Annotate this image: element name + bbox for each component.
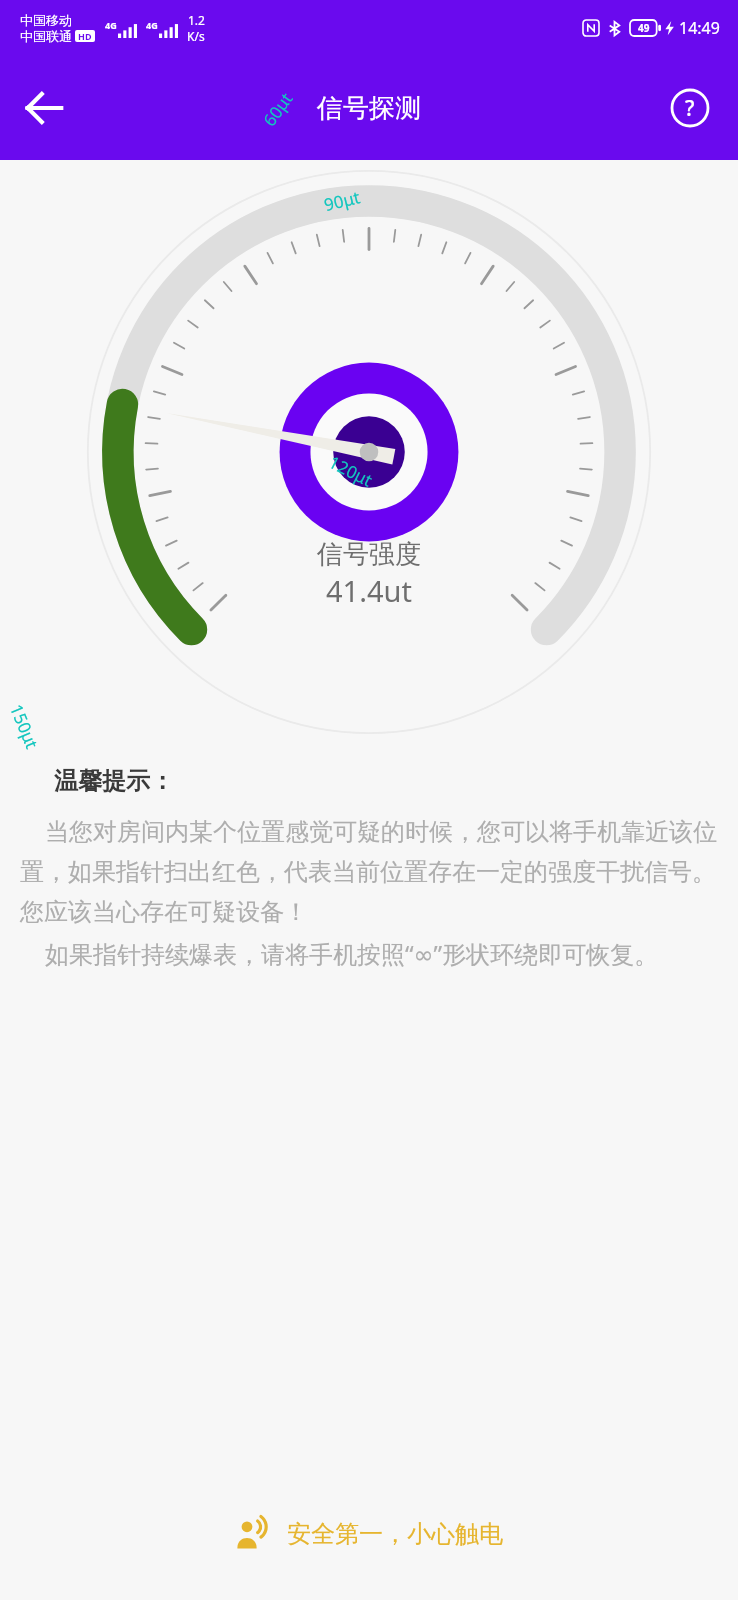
staticText: 温馨提示：: [54, 766, 174, 796]
staticText: 如果指针持续爆表，请将手机按照“∞”形状环绕即可恢复。: [20, 937, 659, 970]
staticText: 41.4ut: [326, 571, 412, 610]
staticText: HD: [78, 30, 92, 42]
staticText: 150μt: [517, 357, 555, 408]
staticText: 1.2: [188, 12, 205, 28]
staticText: 0μt: [223, 562, 258, 597]
staticText: 安全第一，小心触电: [287, 1519, 503, 1549]
staticText: 49: [638, 21, 650, 35]
button[interactable]: 安全第一，小心触电: [0, 1514, 738, 1554]
staticText: 信号探测: [317, 92, 421, 125]
staticText: 14:49: [679, 17, 720, 39]
staticText: 当您对房间内某个位置感觉可疑的时候，您可以将手机靠近该位置，如果指针扫出红色，代…: [20, 814, 718, 927]
staticText: 4G: [105, 19, 117, 31]
button[interactable]: Back: [12, 76, 76, 140]
staticText: 4G: [146, 19, 158, 31]
staticText: 信号强度: [317, 538, 421, 571]
staticText: ?: [685, 94, 695, 123]
button[interactable]: Help: [658, 76, 722, 140]
staticText: 中国移动: [20, 12, 72, 28]
staticText: 中国联通: [20, 28, 72, 44]
staticText: K/s: [187, 28, 205, 44]
